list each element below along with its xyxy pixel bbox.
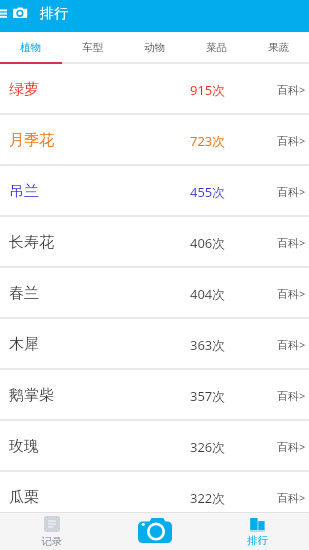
button[interactable]: 瓜栗 (0, 472, 309, 523)
button[interactable]: 菜品 (185, 32, 247, 64)
staticText: 406次 (190, 234, 226, 252)
button[interactable]: 月季花 (0, 115, 309, 166)
staticText: 百科> (277, 133, 306, 148)
staticText: 363次 (190, 336, 226, 354)
button[interactable]: Menu (0, 0, 13, 32)
staticText: 绿萝 (9, 80, 39, 99)
staticText: 404次 (190, 285, 226, 303)
staticText: 百科> (277, 82, 306, 97)
staticText: 455次 (190, 183, 226, 201)
staticText: 排行 (40, 5, 68, 23)
button[interactable]: 排行 (206, 512, 309, 550)
staticText: 月季花 (9, 131, 54, 150)
button[interactable]: 长寿花 (0, 217, 309, 268)
button[interactable]: 春兰 (0, 268, 309, 319)
staticText: 玫瑰 (9, 437, 39, 456)
staticText: 吊兰 (9, 182, 39, 201)
staticText: 瓜栗 (9, 488, 39, 507)
button[interactable]: 鹅掌柴 (0, 370, 309, 421)
button[interactable]: 绿萝 (0, 64, 309, 115)
staticText: 357次 (190, 387, 226, 405)
staticText: 百科> (277, 337, 306, 352)
staticText: 百科> (277, 490, 306, 505)
staticText: 百科> (277, 439, 306, 454)
button[interactable]: 植物 (0, 32, 61, 64)
staticText: 果蔬 (268, 41, 289, 54)
staticText: 鹅掌柴 (9, 386, 54, 405)
staticText: 菜品 (206, 41, 227, 54)
staticText: 百科> (277, 388, 306, 403)
staticText: 723次 (190, 132, 226, 150)
staticText: 春兰 (9, 284, 39, 303)
staticText: 木犀 (9, 335, 39, 354)
button[interactable]: 果蔬 (247, 32, 309, 64)
staticText: 长寿花 (9, 233, 54, 252)
staticText: 排行 (247, 534, 268, 547)
button[interactable]: 车型 (61, 32, 123, 64)
staticText: 车型 (82, 41, 103, 54)
button[interactable]: 记录 (0, 512, 103, 550)
staticText: 百科> (277, 286, 306, 301)
staticText: 百科> (277, 235, 306, 250)
staticText: 记录 (41, 535, 62, 548)
staticText: 动物 (144, 41, 165, 54)
button[interactable]: 动物 (123, 32, 185, 64)
button[interactable]: 木犀 (0, 319, 309, 370)
staticText: 百科> (277, 184, 306, 199)
staticText: 322次 (190, 489, 226, 507)
button[interactable]: 玫瑰 (0, 421, 309, 472)
button[interactable]: Take photo (103, 512, 206, 550)
staticText: 326次 (190, 438, 226, 456)
staticText: 915次 (190, 81, 226, 99)
staticText: 植物 (20, 41, 41, 54)
button[interactable]: Camera (13, 0, 28, 32)
button[interactable]: 吊兰 (0, 166, 309, 217)
